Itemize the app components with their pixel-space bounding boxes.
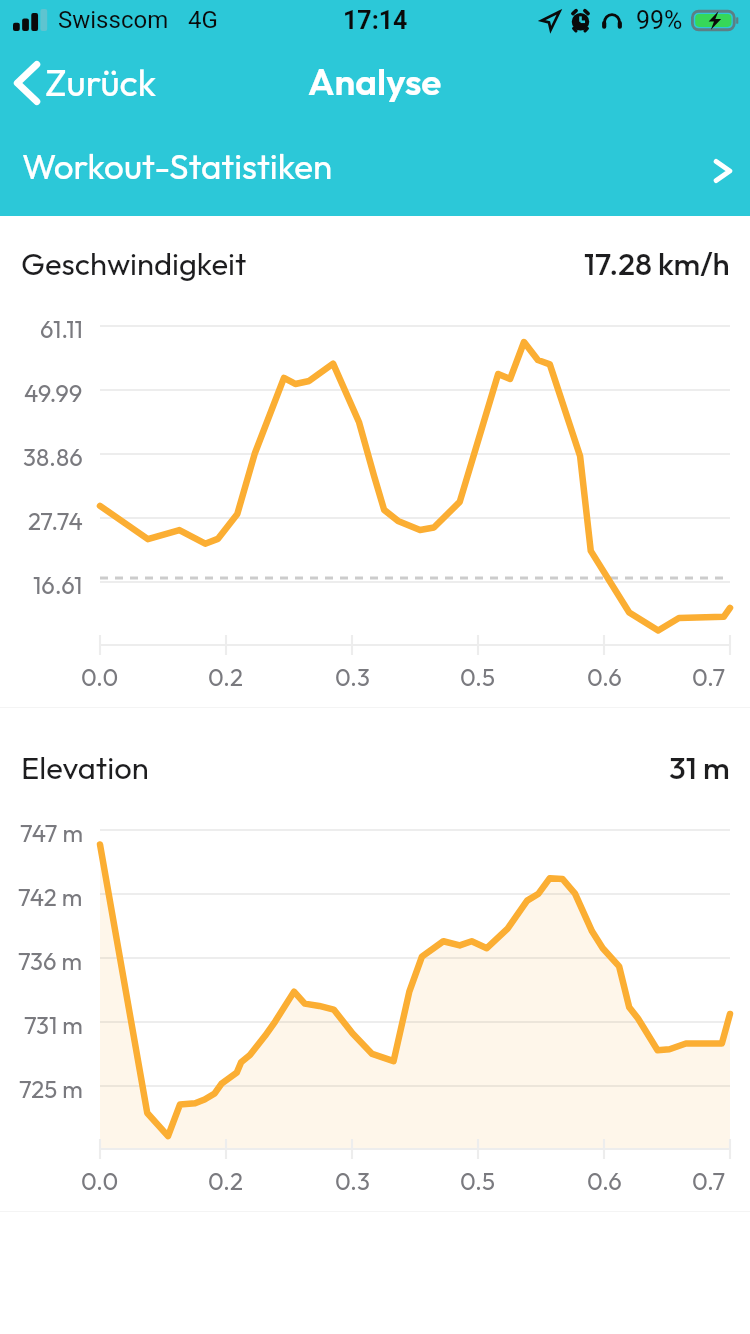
staticText: 742 m — [18, 882, 83, 912]
other: Open workout statistics — [713, 159, 733, 183]
staticText: 38.86 — [23, 442, 83, 472]
staticText: 31 m — [669, 748, 730, 787]
staticText: 736 m — [18, 946, 83, 976]
staticText: 0.0 — [81, 662, 119, 692]
staticText: 17.28 km/h — [584, 244, 730, 283]
staticText: 0.7 — [692, 1166, 726, 1196]
other: Back — [13, 60, 40, 106]
staticText: 0.6 — [587, 662, 622, 692]
staticText: 99% — [636, 6, 683, 35]
staticText: Elevation — [21, 748, 149, 787]
staticText: Zurück — [45, 59, 157, 106]
staticText: 4G — [188, 6, 218, 34]
staticText: 49.99 — [24, 378, 83, 408]
staticText: Workout-Statistiken — [22, 144, 713, 188]
staticText: 725 m — [19, 1074, 83, 1104]
staticText: Geschwindigkeit — [21, 244, 247, 283]
staticText: 0.2 — [208, 1166, 244, 1196]
staticText: 16.61 — [33, 570, 83, 600]
staticText: 27.74 — [28, 506, 83, 536]
staticText: 0.3 — [335, 1166, 370, 1196]
button[interactable]: Back — [0, 47, 173, 110]
staticText: 0.7 — [692, 662, 726, 692]
staticText: 0.5 — [460, 1166, 496, 1196]
button[interactable]: Workout-Statistiken — [0, 116, 750, 216]
staticText: 0.6 — [587, 1166, 622, 1196]
staticText: 17:14 — [343, 6, 408, 35]
staticText: 61.11 — [40, 314, 83, 344]
staticText: 0.5 — [460, 662, 496, 692]
staticText: Swisscom — [58, 6, 169, 34]
staticText: 0.3 — [335, 662, 370, 692]
staticText: 0.0 — [81, 1166, 119, 1196]
staticText: 0.2 — [208, 662, 244, 692]
staticText: Analyse — [308, 58, 442, 105]
staticText: 747 m — [20, 818, 83, 848]
staticText: 731 m — [24, 1010, 83, 1040]
